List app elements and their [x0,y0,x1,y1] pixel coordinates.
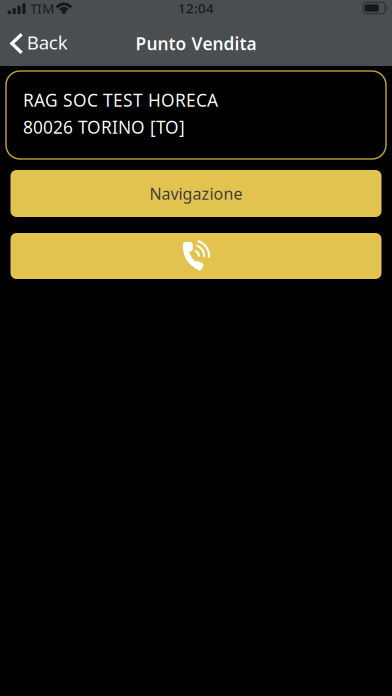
button[interactable]: Navigazione [10,170,381,217]
staticText: 80026 TORINO [TO] [23,115,185,138]
staticText: TIM [30,0,54,17]
button[interactable]: Chiama [10,233,381,279]
staticText: Navigazione [149,183,242,204]
staticText: RAG SOC TEST HORECA [23,88,218,111]
staticText: Punto Vendita [135,32,256,55]
staticText: Back [27,30,68,55]
staticText: 12:04 [178,0,214,17]
button[interactable]: Back [0,21,78,65]
